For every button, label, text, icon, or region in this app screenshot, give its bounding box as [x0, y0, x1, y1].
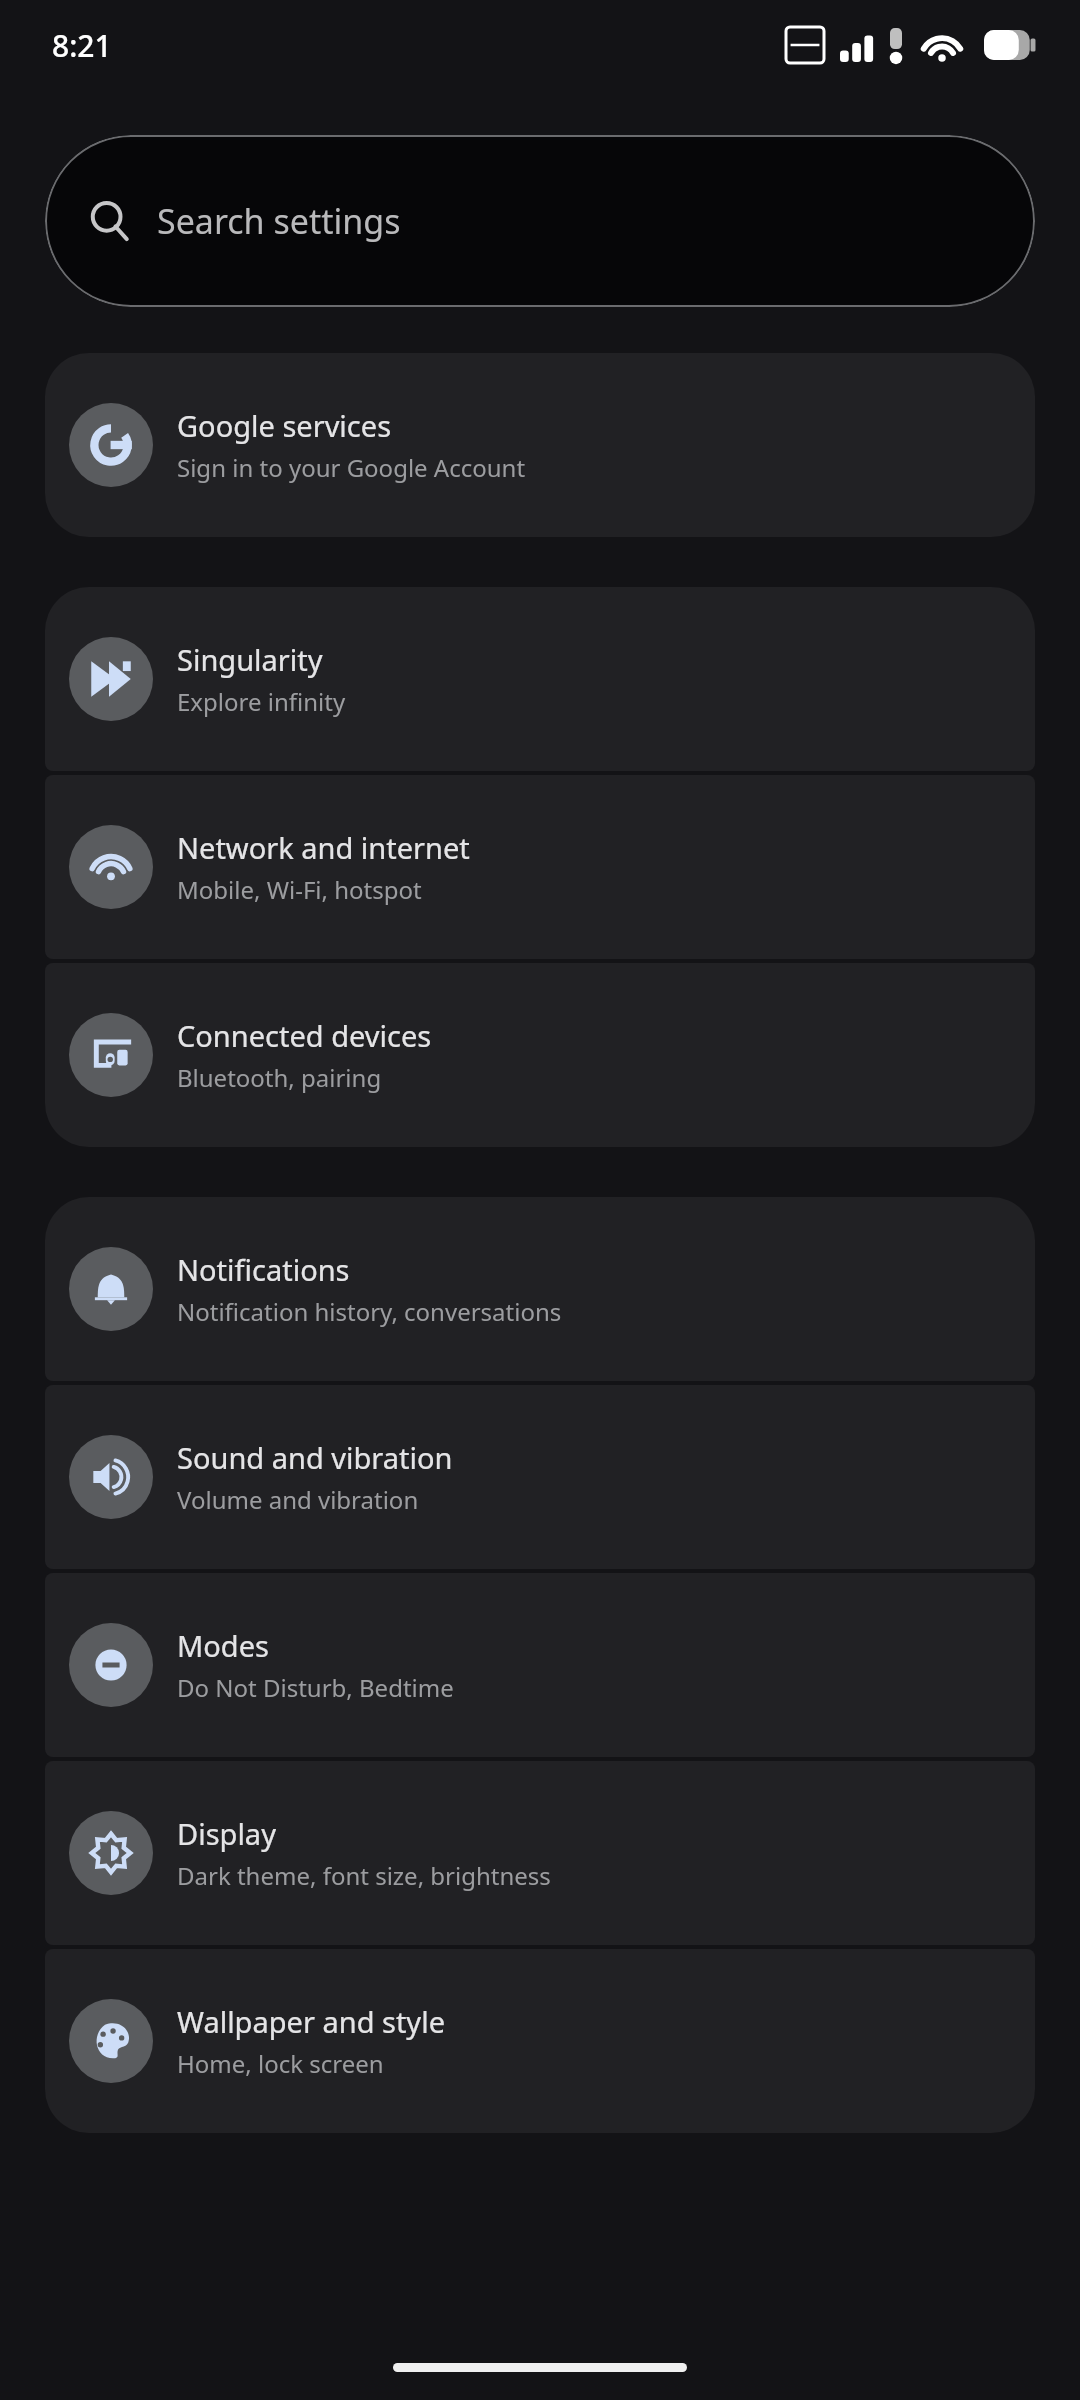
staticText: Mobile, Wi-Fi, hotspot [177, 873, 422, 906]
button[interactable]: Search [45, 135, 1035, 307]
staticText: Do Not Disturb, Bedtime [177, 1671, 454, 1704]
staticText: Sound and vibration [177, 1438, 453, 1477]
button[interactable]: Singularity [45, 587, 1035, 771]
staticText: Display [177, 1814, 276, 1853]
button[interactable]: Wallpaper and style [45, 1949, 1035, 2133]
staticText: 8:21 [52, 25, 112, 66]
staticText: Notifications [177, 1250, 350, 1289]
button[interactable]: Connected devices [45, 963, 1035, 1147]
staticText: Connected devices [177, 1016, 432, 1055]
button[interactable]: Network and internet [45, 775, 1035, 959]
staticText: Bluetooth, pairing [177, 1061, 382, 1094]
staticText: Network and internet [177, 828, 470, 867]
other: Search [89, 200, 131, 242]
button[interactable]: Modes [45, 1573, 1035, 1757]
staticText: Sign in to your Google Account [177, 451, 526, 484]
button[interactable]: Google services [45, 353, 1035, 537]
staticText: Search settings [157, 198, 401, 244]
staticText: Wallpaper and style [177, 2002, 445, 2041]
button[interactable]: Notifications [45, 1197, 1035, 1381]
button[interactable]: Sound and vibration [45, 1385, 1035, 1569]
staticText: Explore infinity [177, 685, 346, 718]
staticText: Volume and vibration [177, 1483, 419, 1516]
staticText: Singularity [177, 640, 323, 679]
staticText: Dark theme, font size, brightness [177, 1859, 551, 1892]
button[interactable]: Display [45, 1761, 1035, 1945]
staticText: Modes [177, 1626, 269, 1665]
staticText: Home, lock screen [177, 2047, 384, 2080]
staticText: Google services [177, 406, 392, 445]
staticText: Notification history, conversations [177, 1295, 562, 1328]
